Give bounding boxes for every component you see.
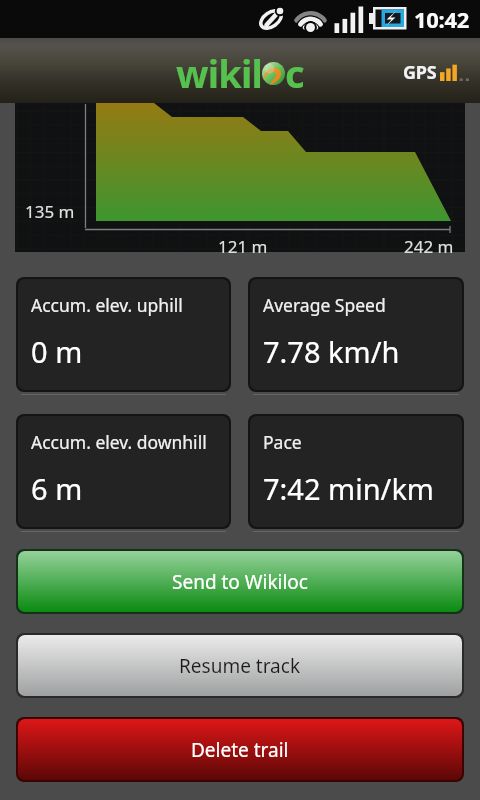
staticText: 121 m: [218, 235, 268, 258]
staticText: wikil: [176, 47, 263, 99]
staticText: Delete trail: [191, 737, 289, 763]
staticText: Accum. elev. uphill: [31, 293, 183, 317]
staticText: Pace: [263, 430, 302, 454]
button[interactable]: Pace: [250, 416, 462, 527]
staticText: c: [285, 47, 305, 99]
button[interactable]: Average Speed: [250, 279, 462, 390]
staticText: 242 m: [404, 235, 454, 258]
staticText: 6 m: [31, 469, 83, 508]
staticText: 0 m: [31, 332, 83, 371]
button[interactable]: Accum. elev. downhill: [18, 416, 229, 527]
button[interactable]: Accum. elev. uphill: [18, 279, 229, 390]
staticText: Accum. elev. downhill: [31, 430, 207, 454]
button[interactable]: Delete trail: [18, 719, 462, 780]
staticText: 7:42 min/km: [263, 469, 434, 508]
staticText: Resume track: [179, 653, 301, 679]
staticText: Average Speed: [263, 293, 386, 317]
staticText: Send to Wikiloc: [172, 569, 308, 595]
button[interactable]: Wikiloc home: [176, 47, 305, 99]
staticText: GPS: [403, 60, 437, 85]
staticText: 10:42: [414, 4, 470, 34]
button[interactable]: GPS signal status: [403, 60, 480, 85]
staticText: 135 m: [25, 200, 75, 223]
button[interactable]: Resume track: [18, 635, 462, 696]
button[interactable]: Send to Wikiloc: [18, 551, 462, 612]
staticText: 7.78 km/h: [263, 332, 400, 371]
